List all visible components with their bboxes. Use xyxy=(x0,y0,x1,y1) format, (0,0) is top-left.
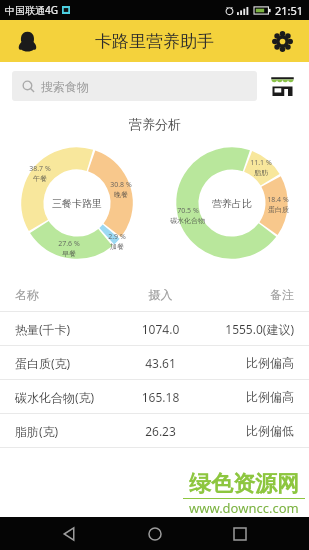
staticText: 2.9 % xyxy=(108,232,126,242)
button[interactable]: 脂肪(克) xyxy=(0,414,309,447)
staticText: 卡路里营养助手 xyxy=(95,31,214,52)
staticText: www.downcc.com xyxy=(189,499,299,517)
staticText: 38.7 % xyxy=(29,164,51,174)
button[interactable]: Profile xyxy=(13,27,41,55)
staticText: 30.8 % xyxy=(110,180,132,190)
button[interactable]: Home xyxy=(138,517,172,550)
staticText: 备注 xyxy=(201,287,294,302)
staticText: 脂肪(克) xyxy=(15,423,120,439)
button[interactable]: 搜索食物 xyxy=(12,71,257,101)
staticText: 搜索食物 xyxy=(41,79,89,94)
staticText: 碳水化合物(克) xyxy=(15,389,120,405)
button[interactable]: Settings xyxy=(267,26,297,56)
staticText: 碳水化合物 xyxy=(170,216,205,225)
staticText: 三餐卡路里 xyxy=(52,197,102,210)
staticText: 43.61 xyxy=(120,355,201,371)
staticText: 脂肪 xyxy=(254,168,268,177)
staticText: 营养占比 xyxy=(212,197,252,210)
staticText: 27.6 % xyxy=(58,239,80,249)
staticText: 21:51 xyxy=(275,3,304,18)
button[interactable]: Food store xyxy=(267,71,297,101)
staticText: 26.23 xyxy=(120,423,201,439)
staticText: 加餐 xyxy=(110,242,124,251)
staticText: 名称 xyxy=(15,287,120,302)
staticText: 蛋白质 xyxy=(268,205,289,214)
staticText: 18.4 % xyxy=(267,195,289,205)
staticText: 1074.0 xyxy=(120,321,201,337)
staticText: 1555.0(建议) xyxy=(201,321,294,337)
staticText: 早餐 xyxy=(62,249,76,258)
staticText: 中国联通4G xyxy=(5,3,58,17)
staticText: 11.1 % xyxy=(250,158,272,168)
button[interactable]: 蛋白质(克) xyxy=(0,346,309,379)
button[interactable]: 名称 xyxy=(0,278,309,311)
staticText: 绿色资源网 xyxy=(189,470,299,498)
button[interactable]: 碳水化合物(克) xyxy=(0,380,309,413)
staticText: 蛋白质(克) xyxy=(15,355,120,371)
staticText: 营养分析 xyxy=(129,116,181,132)
staticText: 比例偏低 xyxy=(201,423,294,438)
staticText: 比例偏高 xyxy=(201,355,294,370)
button[interactable]: Back xyxy=(52,517,86,550)
button[interactable]: 热量(千卡) xyxy=(0,312,309,345)
staticText: 165.18 xyxy=(120,389,201,405)
staticText: 比例偏高 xyxy=(201,389,294,404)
button[interactable]: Recent apps xyxy=(223,517,257,550)
staticText: 摄入 xyxy=(120,287,201,302)
staticText: 晚餐 xyxy=(114,190,128,199)
staticText: 午餐 xyxy=(33,174,47,183)
staticText: 热量(千卡) xyxy=(15,321,120,337)
staticText: 70.5 % xyxy=(177,206,199,216)
